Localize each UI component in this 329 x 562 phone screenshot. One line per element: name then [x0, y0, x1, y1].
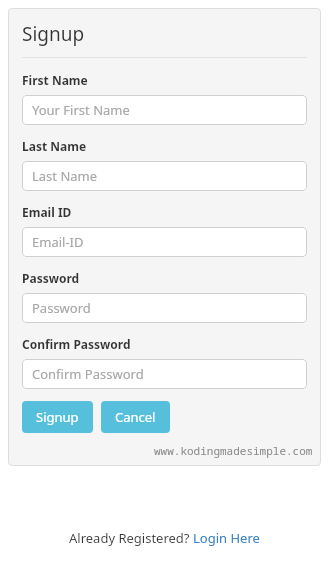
staticText: Password: [22, 270, 80, 286]
staticText: Last Name: [22, 138, 87, 154]
button[interactable]: Confirm Password: [22, 359, 307, 389]
staticText: Last Name: [32, 167, 98, 185]
staticText: Already Registered?: [69, 529, 193, 547]
button[interactable]: Cancel: [101, 401, 170, 433]
staticText: Signup: [36, 408, 79, 426]
staticText: Confirm Password: [22, 336, 131, 352]
button[interactable]: Signup: [22, 401, 93, 433]
button[interactable]: Email-ID: [22, 227, 307, 257]
staticText: www.kodingmadesimple.com: [154, 443, 313, 458]
button[interactable]: Password: [22, 293, 307, 323]
staticText: First Name: [22, 72, 88, 88]
staticText: Email-ID: [32, 233, 84, 251]
staticText: Login Here: [193, 529, 260, 547]
staticText: Email ID: [22, 204, 72, 220]
staticText: Password: [32, 299, 91, 317]
button[interactable]: Login Here: [193, 529, 260, 547]
staticText: Confirm Password: [32, 365, 144, 383]
staticText: Your First Name: [32, 101, 130, 119]
staticText: Signup: [22, 21, 85, 47]
staticText: Cancel: [115, 408, 156, 426]
button[interactable]: Last Name: [22, 161, 307, 191]
button[interactable]: Your First Name: [22, 95, 307, 125]
